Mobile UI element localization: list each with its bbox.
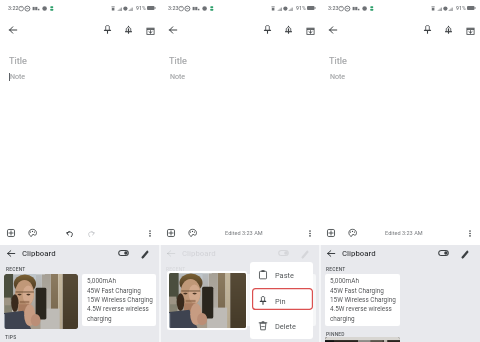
staticText: PINNED <box>326 331 345 337</box>
button[interactable]: Redo <box>87 230 95 237</box>
staticText: 3:23 <box>328 5 339 11</box>
button[interactable]: Pin <box>423 25 432 34</box>
button[interactable]: Reminder <box>444 25 453 34</box>
staticText: TIPS <box>5 334 17 340</box>
button[interactable]: Back <box>9 26 17 34</box>
staticText: Edited 3:23 AM <box>225 230 263 237</box>
staticText: charging <box>330 315 355 323</box>
staticText: 4.5W reverse wireless <box>330 305 392 313</box>
staticText: Note <box>330 73 345 81</box>
staticText: charging <box>87 315 112 323</box>
button[interactable]: Colour <box>28 229 37 237</box>
button[interactable] <box>82 274 156 326</box>
staticText: RECENT <box>326 266 346 272</box>
button[interactable]: Delete <box>250 313 313 339</box>
button[interactable]: Reminder <box>284 25 293 34</box>
staticText: Note <box>10 73 25 81</box>
staticText: Delete <box>275 322 296 331</box>
button[interactable]: More options <box>308 230 312 237</box>
staticText: 5,000mAh <box>330 277 359 285</box>
staticText: Clipboard <box>342 249 376 258</box>
button[interactable]: More options <box>468 230 472 237</box>
staticText: Clipboard <box>22 249 56 258</box>
button[interactable]: Back <box>329 26 337 34</box>
staticText: 15W Wireless Charging <box>87 296 153 304</box>
staticText: 3:22 <box>8 5 19 11</box>
staticText: 91% <box>136 5 146 11</box>
button[interactable]: Pin <box>103 25 112 34</box>
button[interactable]: Edit <box>461 250 469 259</box>
button[interactable]: Back <box>7 250 15 257</box>
staticText: 3:23 <box>168 5 179 11</box>
staticText: Note <box>170 73 185 81</box>
staticText: Title <box>169 55 187 66</box>
button[interactable] <box>325 274 400 326</box>
button[interactable]: Reminder <box>124 25 133 34</box>
button[interactable]: Archive <box>306 27 315 35</box>
button[interactable]: Back <box>327 250 335 257</box>
staticText: Clipboard <box>182 249 216 258</box>
button[interactable]: Pin <box>250 288 313 314</box>
staticText: 45W Fast Charging <box>330 287 384 295</box>
staticText: 5,000mAh <box>87 277 116 285</box>
button[interactable]: Undo <box>66 230 74 237</box>
staticText: RECENT <box>166 266 186 272</box>
staticText: Paste <box>275 271 294 280</box>
button[interactable]: Colour <box>188 229 197 237</box>
button[interactable]: Paste <box>250 262 313 288</box>
staticText: 45W Fast Charging <box>87 287 141 295</box>
button[interactable]: Toggle clipboard <box>438 250 449 256</box>
button[interactable]: Pinned image <box>325 337 400 342</box>
button[interactable]: Back <box>167 250 175 257</box>
button[interactable]: Archive <box>466 27 475 35</box>
staticText: Edited 3:23 AM <box>385 230 423 237</box>
button[interactable]: Back <box>169 26 177 34</box>
button[interactable]: Archive <box>146 27 155 35</box>
button[interactable]: Add <box>327 229 335 237</box>
staticText: Title <box>9 55 27 66</box>
staticText: 4.5W reverse wireless <box>87 305 149 313</box>
staticText: RECENT <box>6 266 26 272</box>
button[interactable]: Add <box>7 229 15 237</box>
staticText: Title <box>329 55 347 66</box>
button[interactable]: Clipboard image <box>4 274 78 329</box>
staticText: Pin <box>275 297 286 306</box>
button[interactable]: Pin <box>263 25 272 34</box>
button[interactable]: Toggle clipboard <box>278 250 289 256</box>
staticText: 15W Wireless Charging <box>330 296 396 304</box>
button[interactable]: Toggle clipboard <box>118 250 129 256</box>
staticText: 91% <box>296 5 306 11</box>
button[interactable]: Edit <box>301 250 309 259</box>
button[interactable]: Clipboard image <box>167 271 247 330</box>
staticText: 91% <box>456 5 466 11</box>
button[interactable]: More options <box>148 230 152 237</box>
button[interactable]: Edit <box>141 250 149 259</box>
button[interactable]: Colour <box>348 229 357 237</box>
button[interactable]: Add <box>167 229 175 237</box>
